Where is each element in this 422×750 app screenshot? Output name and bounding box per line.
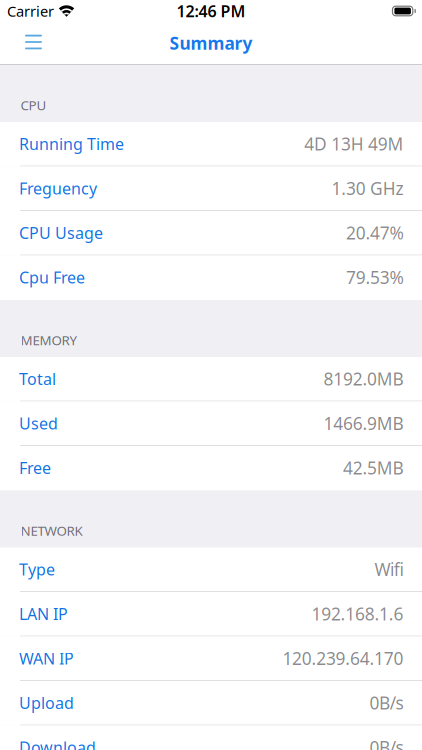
staticText: Download xyxy=(19,737,96,750)
staticText: Total xyxy=(19,368,56,389)
staticText: 42.5MB xyxy=(343,456,403,479)
staticText: LAN IP xyxy=(19,603,68,624)
staticText: Used xyxy=(19,413,58,434)
staticText: 1.30 GHz xyxy=(332,177,403,200)
staticText: CPU Usage xyxy=(19,222,103,243)
staticText: 120.239.64.170 xyxy=(282,647,403,670)
staticText: 79.53% xyxy=(346,266,403,289)
staticText: 0B/s xyxy=(369,691,403,714)
staticText: Type xyxy=(19,559,55,580)
staticText: Carrier xyxy=(7,1,54,21)
staticText: 12:46 PM xyxy=(176,0,245,22)
staticText: Freguency xyxy=(19,178,97,199)
staticText: NETWORK xyxy=(20,522,82,539)
staticText: WAN IP xyxy=(19,648,74,669)
staticText: Upload xyxy=(19,692,74,713)
staticText: Running Time xyxy=(19,133,124,154)
staticText: 0B/s xyxy=(369,736,403,750)
staticText: 4D 13H 49M xyxy=(304,132,403,155)
staticText: 1466.9MB xyxy=(324,412,403,435)
staticText: Cpu Free xyxy=(19,267,85,288)
staticText: Free xyxy=(19,457,51,478)
staticText: 20.47% xyxy=(346,221,403,244)
staticText: Wifi xyxy=(374,558,403,581)
staticText: CPU xyxy=(20,96,46,114)
staticText: MEMORY xyxy=(20,331,77,349)
button[interactable]: Menu xyxy=(0,35,54,51)
staticText: Summary xyxy=(169,31,252,54)
staticText: 8192.0MB xyxy=(324,367,403,390)
staticText: 192.168.1.6 xyxy=(311,602,403,625)
